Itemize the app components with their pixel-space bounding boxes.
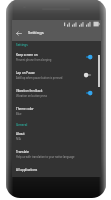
- staticText: Settings: [28, 30, 44, 35]
- staticText: General: [16, 123, 28, 127]
- button[interactable]: Theme color: [12, 103, 101, 121]
- button[interactable]: Keep screen on: [12, 49, 101, 67]
- button[interactable]: All applications: [12, 164, 101, 182]
- staticText: Keep screen on: [16, 53, 38, 57]
- staticText: Vibration feedback: [16, 89, 43, 93]
- button[interactable]: Vibration feedback: [12, 85, 101, 103]
- staticText: Translate: [16, 150, 29, 154]
- button[interactable]: Back: [13, 28, 24, 39]
- button[interactable]: About: [12, 128, 101, 146]
- staticText: Vibration on button press: [16, 94, 48, 98]
- button[interactable]: Switch on: [85, 85, 94, 103]
- button[interactable]: Translate: [12, 146, 101, 164]
- button[interactable]: Switch off: [85, 67, 94, 85]
- button[interactable]: Switch on: [85, 49, 94, 67]
- staticText: Prevent phone from sleeping: [16, 58, 52, 62]
- staticText: Add lap when pause button is pressed: [16, 76, 63, 80]
- staticText: N/A: [16, 137, 21, 141]
- staticText: Blue: [16, 112, 22, 116]
- staticText: Help us with translation to your native …: [16, 155, 75, 159]
- staticText: Settings: [16, 43, 28, 47]
- staticText: Lap on Pause: [16, 71, 35, 75]
- staticText: All applications: [16, 168, 38, 172]
- staticText: Theme color: [16, 107, 34, 111]
- staticText: About: [16, 132, 25, 136]
- button[interactable]: Lap on Pause: [12, 67, 101, 85]
